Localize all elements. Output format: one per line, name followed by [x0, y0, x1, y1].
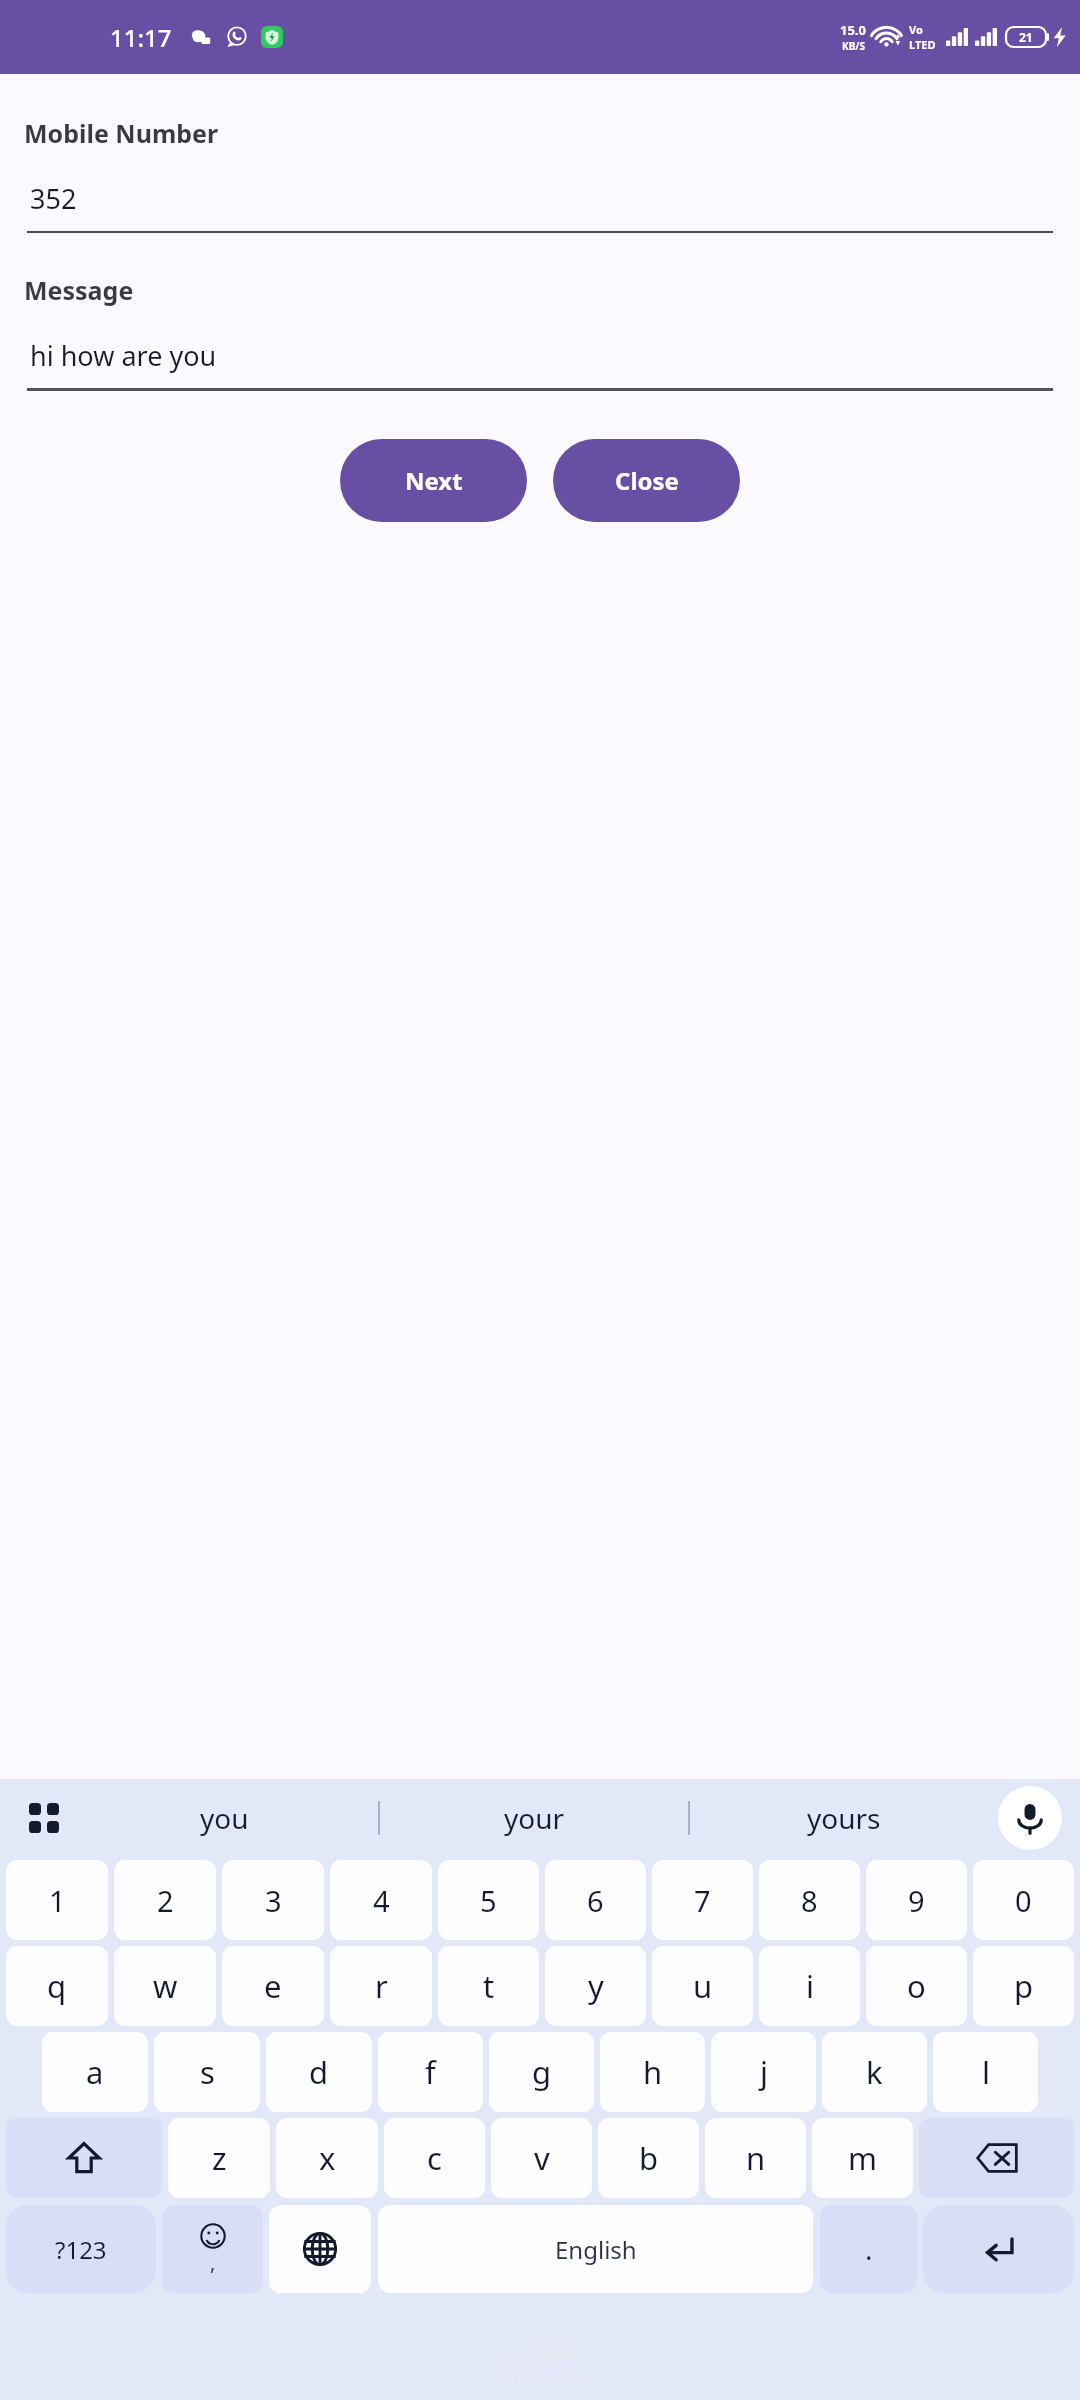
staticText: 11:17	[110, 21, 172, 54]
staticText: m	[848, 2137, 877, 2179]
staticText: v	[534, 2137, 550, 2179]
button[interactable]: w	[114, 1946, 216, 2026]
button[interactable]: y	[545, 1946, 646, 2026]
button[interactable]: o	[866, 1946, 967, 2026]
button[interactable]: Voice input	[998, 1786, 1062, 1850]
staticText: s	[200, 2051, 215, 2093]
staticText: yours	[807, 1799, 881, 1837]
button[interactable]: Next	[340, 439, 527, 522]
button[interactable]: you	[70, 1779, 378, 1857]
staticText: 3	[265, 1881, 282, 1920]
staticText: 8	[801, 1881, 818, 1920]
button[interactable]: hi how are you	[27, 337, 1053, 391]
button[interactable]: c	[384, 2118, 485, 2198]
staticText: j	[760, 2051, 768, 2093]
button[interactable]: Emoji	[162, 2205, 263, 2293]
button[interactable]: b	[598, 2118, 699, 2198]
button[interactable]: s	[154, 2032, 260, 2112]
staticText: t	[483, 1965, 495, 2007]
button[interactable]: k	[822, 2032, 927, 2112]
button[interactable]: 9	[866, 1860, 967, 1940]
staticText: LTED	[909, 37, 936, 52]
staticText: 15.0	[840, 21, 866, 39]
button[interactable]: Change language	[269, 2205, 371, 2293]
staticText: a	[86, 2051, 104, 2093]
button[interactable]: Backspace	[919, 2118, 1074, 2198]
staticText: e	[264, 1965, 282, 2007]
button[interactable]: Shift	[6, 2118, 162, 2198]
staticText: hi how are you	[30, 337, 217, 374]
button[interactable]: 0	[973, 1860, 1074, 1940]
button[interactable]: n	[705, 2118, 806, 2198]
button[interactable]: h	[600, 2032, 705, 2112]
staticText: w	[153, 1965, 178, 2007]
staticText: 9	[908, 1881, 925, 1920]
button[interactable]: English	[378, 2205, 813, 2293]
staticText: your	[504, 1799, 565, 1837]
staticText: 7	[694, 1881, 711, 1920]
button[interactable]: f	[378, 2032, 483, 2112]
staticText: 21	[1019, 29, 1033, 45]
staticText: 352	[30, 180, 77, 217]
staticText: g	[532, 2051, 552, 2093]
button[interactable]: ?123	[6, 2205, 156, 2293]
button[interactable]: yours	[690, 1779, 998, 1857]
staticText: .	[865, 2230, 873, 2268]
button[interactable]: 3	[222, 1860, 324, 1940]
button[interactable]: 1	[6, 1860, 108, 1940]
button[interactable]: Close	[553, 439, 740, 522]
staticText: q	[47, 1965, 67, 2007]
button[interactable]: u	[652, 1946, 753, 2026]
button[interactable]: 7	[652, 1860, 753, 1940]
staticText: z	[212, 2137, 227, 2179]
button[interactable]: l	[933, 2032, 1038, 2112]
staticText: r	[375, 1965, 388, 2007]
button[interactable]: 4	[330, 1860, 432, 1940]
staticText: c	[427, 2137, 442, 2179]
staticText: Mobile Number	[24, 116, 219, 150]
button[interactable]: t	[438, 1946, 539, 2026]
staticText: y	[588, 1965, 604, 2007]
button[interactable]: v	[491, 2118, 592, 2198]
staticText: k	[866, 2051, 883, 2093]
staticText: 1	[49, 1881, 66, 1920]
staticText: 5	[480, 1881, 497, 1920]
staticText: Close	[615, 464, 679, 497]
button[interactable]: your	[380, 1779, 688, 1857]
button[interactable]: q	[6, 1946, 108, 2026]
staticText: ,	[210, 2249, 216, 2276]
staticText: ?123	[55, 2233, 107, 2266]
button[interactable]: i	[759, 1946, 860, 2026]
button[interactable]: g	[489, 2032, 594, 2112]
button[interactable]: 5	[438, 1860, 539, 1940]
button[interactable]: p	[973, 1946, 1074, 2026]
button[interactable]: d	[266, 2032, 372, 2112]
staticText: n	[746, 2137, 766, 2179]
button[interactable]: 8	[759, 1860, 860, 1940]
staticText: u	[693, 1965, 713, 2007]
staticText: p	[1014, 1965, 1034, 2007]
button[interactable]: x	[276, 2118, 378, 2198]
staticText: English	[555, 2233, 637, 2266]
button[interactable]: .	[820, 2205, 917, 2293]
staticText: l	[982, 2051, 990, 2093]
button[interactable]: j	[711, 2032, 816, 2112]
button[interactable]: Keyboard options	[18, 1792, 70, 1844]
button[interactable]: 352	[27, 180, 1053, 233]
button[interactable]: m	[812, 2118, 913, 2198]
staticText: b	[639, 2137, 659, 2179]
staticText: 6	[587, 1881, 604, 1920]
staticText: 2	[157, 1881, 174, 1920]
button[interactable]: a	[42, 2032, 148, 2112]
button[interactable]: z	[168, 2118, 270, 2198]
button[interactable]: 6	[545, 1860, 646, 1940]
button[interactable]: r	[330, 1946, 432, 2026]
staticText: h	[643, 2051, 663, 2093]
staticText: Vo	[909, 22, 923, 37]
button[interactable]: 2	[114, 1860, 216, 1940]
button[interactable]: Enter	[923, 2205, 1074, 2293]
staticText: i	[806, 1965, 814, 2007]
button[interactable]: e	[222, 1946, 324, 2026]
staticText: x	[319, 2137, 336, 2179]
